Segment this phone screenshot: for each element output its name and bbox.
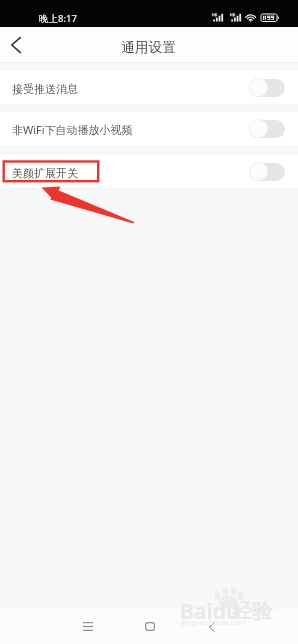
button[interactable]: 返回	[192, 615, 232, 638]
staticText: 美颜扩展开关	[12, 166, 78, 180]
button[interactable]: 主页	[130, 615, 170, 638]
button[interactable]: 美颜扩展开关	[0, 155, 298, 188]
button[interactable]: 最近任务	[68, 615, 108, 638]
staticText: 晚上8:17	[39, 12, 77, 25]
button[interactable]: 接受推送消息	[0, 71, 298, 104]
button[interactable]: 开关	[249, 162, 285, 181]
staticText: 经验	[232, 599, 272, 624]
button[interactable]: 返回	[0, 27, 34, 63]
staticText: Baidu	[180, 597, 240, 626]
staticText: 通用设置	[121, 39, 177, 56]
staticText: jingyan.baidu.com	[181, 617, 246, 627]
button[interactable]: 开关	[249, 78, 285, 97]
button[interactable]: 非WiFi下自动播放小视频	[0, 112, 298, 145]
staticText: 接受推送消息	[12, 82, 78, 96]
button[interactable]: 开关	[249, 119, 285, 138]
staticText: 非WiFi下自动播放小视频	[12, 122, 133, 137]
